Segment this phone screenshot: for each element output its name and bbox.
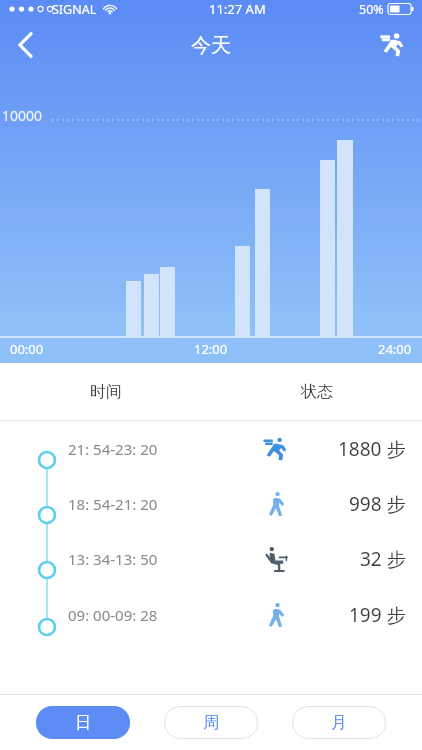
button[interactable]: 周 [164,706,258,739]
staticText: 12:00 [194,340,228,358]
staticText: 时间 [90,382,122,402]
button[interactable]: 月 [292,706,386,739]
staticText: 09: 00-09: 28 [68,605,158,625]
button[interactable]: 13: 34-13: 50 [0,531,422,586]
staticText: 10000 [2,106,43,125]
staticText: 21: 54-23: 20 [68,439,158,459]
staticText: 月 [331,713,347,733]
button[interactable]: 18: 54-21: 20 [0,476,422,531]
button[interactable]: Back [0,22,52,68]
button[interactable]: 日 [36,706,130,739]
staticText: 18: 54-21: 20 [68,494,158,514]
staticText: 998 步 [349,491,406,517]
staticText: 13: 34-13: 50 [68,549,158,569]
staticText: 周 [203,713,219,733]
button[interactable]: 09: 00-09: 28 [0,586,422,643]
staticText: 今天 [191,33,231,58]
staticText: SIGNAL [52,1,97,18]
staticText: 状态 [301,382,333,402]
staticText: 24:00 [378,340,412,358]
staticText: 199 步 [349,602,406,628]
button[interactable]: Run [366,22,422,68]
staticText: 00:00 [10,340,44,358]
staticText: 1880 步 [338,436,406,462]
staticText: 11:27 AM [209,0,266,18]
button[interactable]: 21: 54-23: 20 [0,421,422,476]
staticText: 日 [75,713,91,733]
staticText: 50% [359,1,384,18]
staticText: 32 步 [360,546,406,572]
